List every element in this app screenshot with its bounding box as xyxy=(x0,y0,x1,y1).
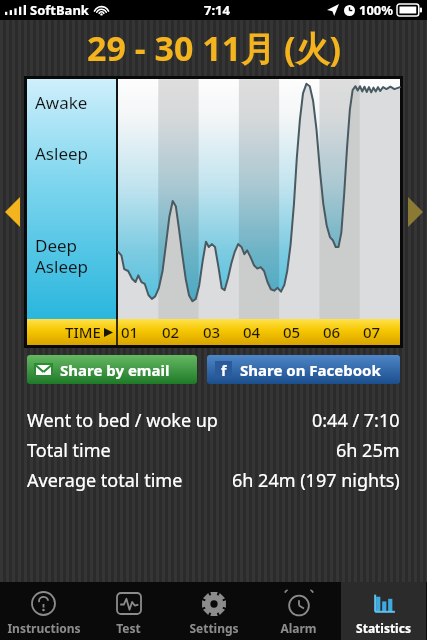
staticText: 6h 24m (197 nights) xyxy=(232,468,400,493)
staticText: 02 xyxy=(162,322,180,342)
staticText: 6h 25m xyxy=(336,438,400,463)
button[interactable]: Statistics xyxy=(341,582,426,640)
staticText: 01 xyxy=(121,322,139,342)
staticText: 29 - 30 11月 (火) xyxy=(87,25,341,71)
staticText: 03 xyxy=(203,322,221,342)
staticText: 06 xyxy=(323,322,341,342)
button[interactable]: Next night xyxy=(403,76,427,348)
staticText: 04 xyxy=(243,322,261,342)
button[interactable]: Alarm xyxy=(256,582,341,640)
staticText: Share by email xyxy=(60,360,170,380)
staticText: Asleep xyxy=(35,142,89,165)
staticText: 05 xyxy=(283,322,301,342)
staticText: Share on Facebook xyxy=(240,360,381,380)
staticText: Instructions xyxy=(7,620,81,636)
button[interactable]: Instructions xyxy=(1,582,86,640)
staticText: Statistics xyxy=(356,620,411,636)
staticText: SoftBank xyxy=(30,1,89,19)
button[interactable]: f xyxy=(207,355,400,384)
staticText: Alarm xyxy=(280,620,317,636)
staticText: Settings xyxy=(189,620,239,636)
staticText: f xyxy=(221,361,227,378)
button[interactable]: Settings xyxy=(171,582,256,640)
staticText: Went to bed / woke up xyxy=(27,408,218,433)
staticText: Total time xyxy=(27,438,111,463)
staticText: Test xyxy=(116,620,141,636)
staticText: TIME xyxy=(65,322,101,342)
staticText: 100% xyxy=(359,1,394,19)
staticText: 0:44 / 7:10 xyxy=(312,408,400,433)
staticText: 07 xyxy=(363,322,381,342)
staticText: 7:14 xyxy=(204,1,230,19)
staticText: Average total time xyxy=(27,468,183,493)
button[interactable]: Share by email xyxy=(27,355,197,384)
staticText: Awake xyxy=(35,91,88,114)
staticText: Deep Asleep xyxy=(35,234,89,278)
button[interactable]: Previous night xyxy=(0,76,24,348)
button[interactable]: Test xyxy=(86,582,171,640)
